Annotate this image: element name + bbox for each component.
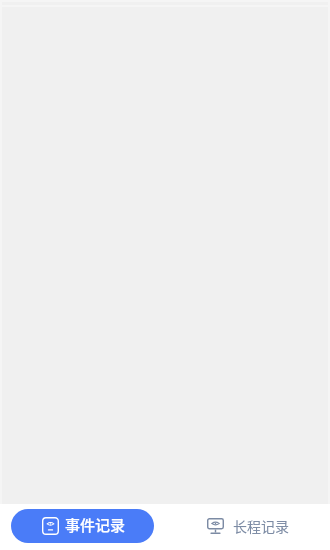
- staticText: 事件记录: [65, 514, 126, 536]
- other: 长程记录: [207, 518, 224, 534]
- button[interactable]: 长程记录: [194, 511, 302, 544]
- button[interactable]: 事件记录: [11, 509, 154, 543]
- other: 事件记录: [42, 517, 59, 535]
- staticText: 长程记录: [233, 516, 289, 536]
